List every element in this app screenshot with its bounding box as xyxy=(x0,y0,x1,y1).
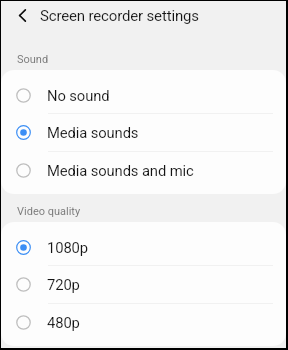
button[interactable]: Media sounds and mic xyxy=(1,151,286,189)
staticText: No sound xyxy=(47,87,110,104)
staticText: Video quality xyxy=(17,205,81,218)
staticText: 720p xyxy=(47,276,80,293)
button[interactable]: 720p xyxy=(1,265,286,303)
button[interactable]: Media sounds xyxy=(1,113,286,151)
button[interactable]: 480p xyxy=(1,303,286,341)
button[interactable]: Navigate up xyxy=(9,3,35,29)
staticText: Media sounds xyxy=(47,124,139,141)
staticText: Screen recorder settings xyxy=(40,7,199,25)
staticText: Media sounds and mic xyxy=(47,162,194,179)
button[interactable]: 1080p xyxy=(1,228,286,266)
staticText: Sound xyxy=(17,53,49,66)
staticText: 480p xyxy=(47,314,80,331)
staticText: 1080p xyxy=(47,239,88,256)
button[interactable]: No sound xyxy=(1,76,286,114)
